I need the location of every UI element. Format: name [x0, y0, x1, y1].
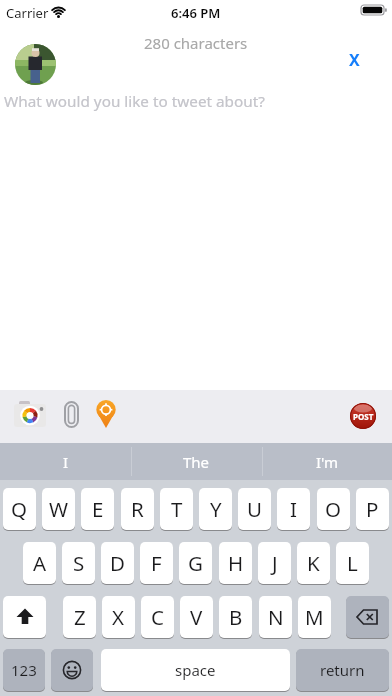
button[interactable]: [346, 596, 389, 638]
staticText: J: [272, 549, 278, 577]
staticText: I'm: [316, 452, 339, 472]
staticText: I: [63, 452, 69, 472]
button[interactable]: [63, 400, 81, 429]
button[interactable]: J: [258, 542, 291, 584]
staticText: E: [92, 495, 104, 523]
button[interactable]: X: [102, 596, 135, 638]
button[interactable]: W: [42, 488, 75, 530]
staticText: C: [151, 603, 164, 631]
staticText: 123: [11, 660, 37, 680]
staticText: Q: [11, 495, 28, 523]
staticText: The: [183, 452, 210, 472]
button[interactable]: space: [101, 649, 290, 691]
button[interactable]: M: [298, 596, 331, 638]
staticText: return: [320, 660, 365, 680]
button[interactable]: O: [317, 488, 350, 530]
button[interactable]: U: [238, 488, 271, 530]
staticText: O: [325, 495, 342, 523]
button[interactable]: T: [160, 488, 193, 530]
staticText: V: [190, 603, 203, 631]
button[interactable]: F: [140, 542, 173, 584]
button[interactable]: [3, 596, 46, 638]
staticText: D: [110, 549, 125, 577]
staticText: A: [33, 549, 47, 577]
staticText: POST: [353, 411, 374, 422]
button[interactable]: H: [219, 542, 252, 584]
button[interactable]: The: [131, 443, 262, 480]
staticText: Carrier: [6, 4, 49, 22]
staticText: U: [247, 495, 262, 523]
staticText: R: [131, 495, 144, 523]
button[interactable]: [12, 399, 48, 429]
button[interactable]: 123: [3, 649, 45, 691]
staticText: K: [307, 549, 320, 577]
button[interactable]: [94, 399, 118, 429]
button[interactable]: E: [81, 488, 114, 530]
staticText: M: [305, 603, 324, 631]
button[interactable]: A: [23, 542, 56, 584]
staticText: H: [228, 549, 244, 577]
staticText: T: [171, 495, 183, 523]
button[interactable]: P: [356, 488, 389, 530]
staticText: space: [175, 660, 216, 680]
button[interactable]: L: [336, 542, 369, 584]
button[interactable]: [15, 44, 56, 85]
button[interactable]: Y: [199, 488, 232, 530]
staticText: Y: [210, 495, 222, 523]
staticText: What would you like to tweet about?: [4, 91, 265, 112]
staticText: 280 characters: [144, 33, 248, 53]
button[interactable]: C: [141, 596, 174, 638]
button[interactable]: I'm: [262, 443, 392, 480]
button[interactable]: G: [179, 542, 212, 584]
staticText: P: [366, 495, 379, 523]
staticText: I: [290, 495, 297, 523]
button[interactable]: I: [0, 443, 131, 480]
button[interactable]: Z: [63, 596, 96, 638]
button[interactable]: N: [259, 596, 292, 638]
button[interactable]: return: [296, 649, 389, 691]
button[interactable]: [51, 649, 93, 691]
staticText: B: [229, 603, 243, 631]
staticText: X: [349, 49, 360, 71]
button[interactable]: K: [297, 542, 330, 584]
button[interactable]: B: [219, 596, 252, 638]
button[interactable]: POST: [350, 403, 376, 429]
staticText: 6:46 PM: [171, 4, 221, 22]
staticText: X: [112, 603, 125, 631]
button[interactable]: V: [180, 596, 213, 638]
button[interactable]: S: [62, 542, 95, 584]
button[interactable]: Q: [3, 488, 36, 530]
button[interactable]: X: [340, 48, 368, 72]
staticText: W: [49, 495, 69, 523]
staticText: Z: [74, 603, 86, 631]
button[interactable]: I: [277, 488, 310, 530]
staticText: L: [347, 549, 358, 577]
staticText: S: [73, 549, 85, 577]
staticText: F: [151, 549, 162, 577]
button[interactable]: R: [121, 488, 154, 530]
staticText: N: [268, 603, 284, 631]
button[interactable]: D: [101, 542, 134, 584]
staticText: G: [188, 549, 203, 577]
